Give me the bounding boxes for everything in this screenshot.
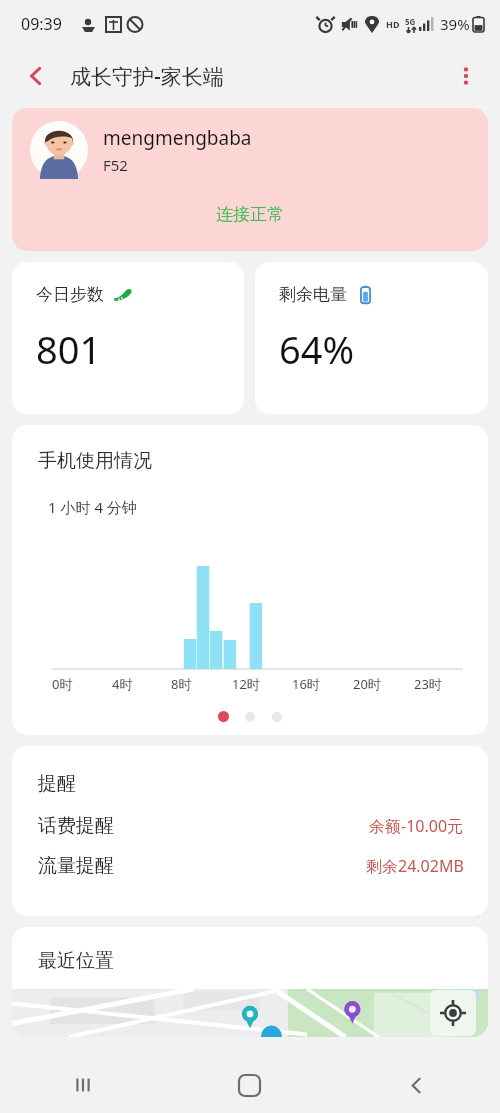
staticText: 成长守护-家长端 bbox=[70, 62, 224, 91]
button[interactable]: My location bbox=[430, 990, 476, 1036]
button[interactable]: 最近位置 bbox=[12, 927, 488, 1037]
button[interactable]: 流量提醒 bbox=[12, 838, 488, 878]
staticText: 提醒 bbox=[38, 772, 76, 796]
staticText: 09:39 bbox=[21, 13, 62, 35]
staticText: 最近位置 bbox=[38, 949, 114, 973]
staticText: 5G bbox=[405, 16, 416, 27]
button[interactable]: 剩余电量 bbox=[255, 262, 488, 414]
staticText: 手机使用情况 bbox=[38, 449, 152, 473]
staticText: mengmengbaba bbox=[103, 125, 252, 151]
staticText: 今日步数 bbox=[36, 284, 104, 305]
staticText: 话费提醒 bbox=[38, 814, 114, 838]
staticText: 剩余24.02MB bbox=[366, 855, 464, 877]
button[interactable]: 手机使用情况 bbox=[12, 425, 488, 735]
staticText: HD bbox=[386, 18, 400, 30]
button[interactable]: Recent apps bbox=[0, 1057, 166, 1113]
staticText: 流量提醒 bbox=[38, 854, 114, 878]
button[interactable]: Home bbox=[166, 1057, 333, 1113]
staticText: 801 bbox=[36, 323, 102, 375]
staticText: 12时 bbox=[232, 675, 260, 693]
button[interactable]: 话费提醒 bbox=[12, 796, 488, 838]
staticText: 64% bbox=[279, 323, 355, 375]
staticText: 39% bbox=[440, 14, 470, 34]
staticText: 4时 bbox=[112, 675, 133, 693]
button[interactable]: Back bbox=[333, 1057, 500, 1113]
staticText: 剩余电量 bbox=[279, 284, 347, 305]
button[interactable]: More options bbox=[446, 56, 486, 96]
staticText: 16时 bbox=[292, 675, 320, 693]
button[interactable]: Back bbox=[18, 58, 54, 94]
button[interactable]: 今日步数 bbox=[12, 262, 244, 414]
staticText: 20时 bbox=[353, 675, 381, 693]
staticText: 23时 bbox=[414, 675, 442, 693]
staticText: 余额-10.00元 bbox=[369, 815, 464, 837]
button[interactable]: mengmengbaba bbox=[12, 108, 488, 251]
staticText: F52 bbox=[103, 155, 128, 175]
staticText: 0时 bbox=[52, 675, 73, 693]
staticText: 1 小时 4 分钟 bbox=[48, 497, 137, 517]
staticText: 8时 bbox=[171, 675, 192, 693]
staticText: 连接正常 bbox=[216, 204, 284, 225]
